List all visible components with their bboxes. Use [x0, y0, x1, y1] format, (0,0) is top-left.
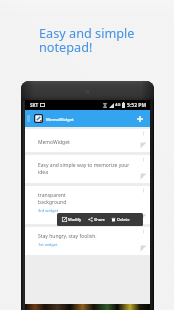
staticText: SKT	[30, 102, 39, 108]
button[interactable]: Share	[88, 213, 105, 226]
staticText: 1st widget	[38, 242, 58, 247]
staticText: MemoWidget	[46, 116, 74, 122]
staticText: 4G	[115, 102, 121, 108]
button[interactable]: Stay hungry, stay foolish.	[25, 227, 150, 255]
button[interactable]: Add note	[133, 112, 146, 125]
staticText: Delete	[117, 217, 130, 222]
staticText: background	[38, 199, 67, 206]
button[interactable]: MemoWidget	[34, 114, 74, 123]
button[interactable]: MemoWidget	[25, 129, 150, 152]
staticText: MemoWidget	[38, 139, 70, 146]
staticText: Easy and simple notepad!	[39, 24, 135, 55]
staticText: 5:52 PM	[127, 102, 147, 109]
staticText: 3rd widget	[38, 208, 59, 213]
staticText: Modify	[68, 217, 82, 222]
staticText: Stay hungry, stay foolish.	[38, 233, 97, 240]
button[interactable]: transparent	[25, 186, 150, 224]
button[interactable]: Delete	[111, 213, 130, 226]
staticText: Share	[94, 217, 105, 222]
staticText: transparent	[38, 192, 66, 199]
button[interactable]: Modify	[62, 213, 82, 226]
staticText: idea	[38, 169, 48, 176]
button[interactable]: Easy and simple way to memorize your	[25, 155, 150, 183]
staticText: Easy and simple way to memorize your	[38, 162, 130, 169]
